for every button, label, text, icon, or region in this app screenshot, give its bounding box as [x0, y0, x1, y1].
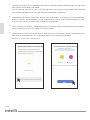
staticText: suivre les instructions en ligne du supp… — [12, 19, 60, 22]
staticText: Mode — [5, 105, 10, 107]
staticText: vous a votre compte — [18, 52, 33, 54]
staticText: Sur l'ecran suivant, selectionnez l'opti… — [12, 24, 85, 27]
staticText: votre nouvel espace de travail securise — [18, 48, 45, 50]
staticText: bruno — [69, 61, 74, 63]
staticText: numerique securise ici connectez — [18, 50, 43, 52]
staticText: B — [67, 61, 69, 63]
staticText: intellio — [5, 108, 19, 114]
button[interactable]: Bienvenue dans votre espace — [16, 44, 43, 88]
staticText: Se connecter avec un compte — [21, 78, 41, 80]
staticText: Figure 2 : ecran de connexion — [12, 37, 40, 40]
staticText: Saisissez le code d'acces de votre appar… — [12, 15, 85, 18]
staticText: 2. — [9, 15, 11, 18]
button[interactable]: Compte 1 — [60, 55, 64, 59]
staticText: c — [53, 70, 54, 72]
staticText: de votre telephone ou de votre tablette … — [12, 10, 67, 13]
staticText: puis appuyez sur le bouton Continuer. — [12, 26, 55, 29]
staticText: pas le code, demandez a un administrateu… — [12, 17, 85, 20]
button[interactable]: Selectionnez le compte que vous — [52, 44, 77, 88]
staticText: continuer ici — [24, 69, 33, 71]
staticText: souhaitez utiliser ici — [58, 47, 72, 49]
button[interactable]: Compte 2 — [69, 55, 73, 59]
staticText: Appuyez sur le bouton pour ajouter un co… — [12, 31, 85, 34]
staticText: de votre compte Google. — [12, 5, 40, 8]
staticText: 1. — [9, 3, 11, 6]
staticText: OK — [63, 81, 66, 83]
staticText: A — [58, 61, 60, 63]
staticText: Si un autre compte, OS 12 consulter les … — [12, 7, 86, 10]
staticText: OK pour confirmer la configuration de vo… — [12, 33, 72, 36]
staticText: Bienvenue dans votre espace — [18, 45, 44, 47]
button[interactable]: OK — [57, 80, 74, 83]
staticText: alice — [60, 61, 64, 63]
staticText: a — [53, 67, 54, 69]
staticText: 4. — [9, 31, 11, 34]
staticText: Si parce que vous devez utiliser le nume… — [12, 3, 86, 6]
staticText: Selectionnez le compte que vous — [54, 45, 79, 47]
staticText: 3. — [9, 24, 11, 27]
button[interactable]: Se connecter — [16, 77, 42, 82]
